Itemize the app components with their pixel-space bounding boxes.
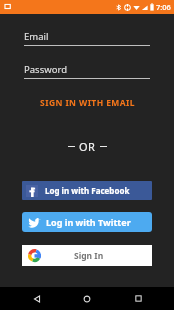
staticText: Sign In: [74, 250, 104, 262]
staticText: Log in with Facebook: [45, 185, 130, 196]
staticText: Password: [24, 63, 67, 76]
staticText: OR: [79, 139, 96, 154]
button[interactable]: Email: [24, 30, 150, 46]
button[interactable]: Back: [23, 287, 51, 310]
staticText: 7:06: [156, 2, 171, 12]
button[interactable]: Recent apps: [124, 287, 152, 310]
button[interactable]: Log in with Facebook: [22, 181, 152, 200]
button[interactable]: Sign In: [22, 245, 152, 266]
staticText: Email: [24, 30, 49, 43]
button[interactable]: Log in with Twitter: [22, 212, 152, 232]
button[interactable]: Home: [73, 287, 101, 310]
button[interactable]: SIGN IN WITH EMAIL: [0, 93, 174, 113]
button[interactable]: Password: [24, 63, 150, 79]
staticText: Log in with Twitter: [46, 216, 131, 228]
staticText: SIGN IN WITH EMAIL: [40, 97, 135, 109]
